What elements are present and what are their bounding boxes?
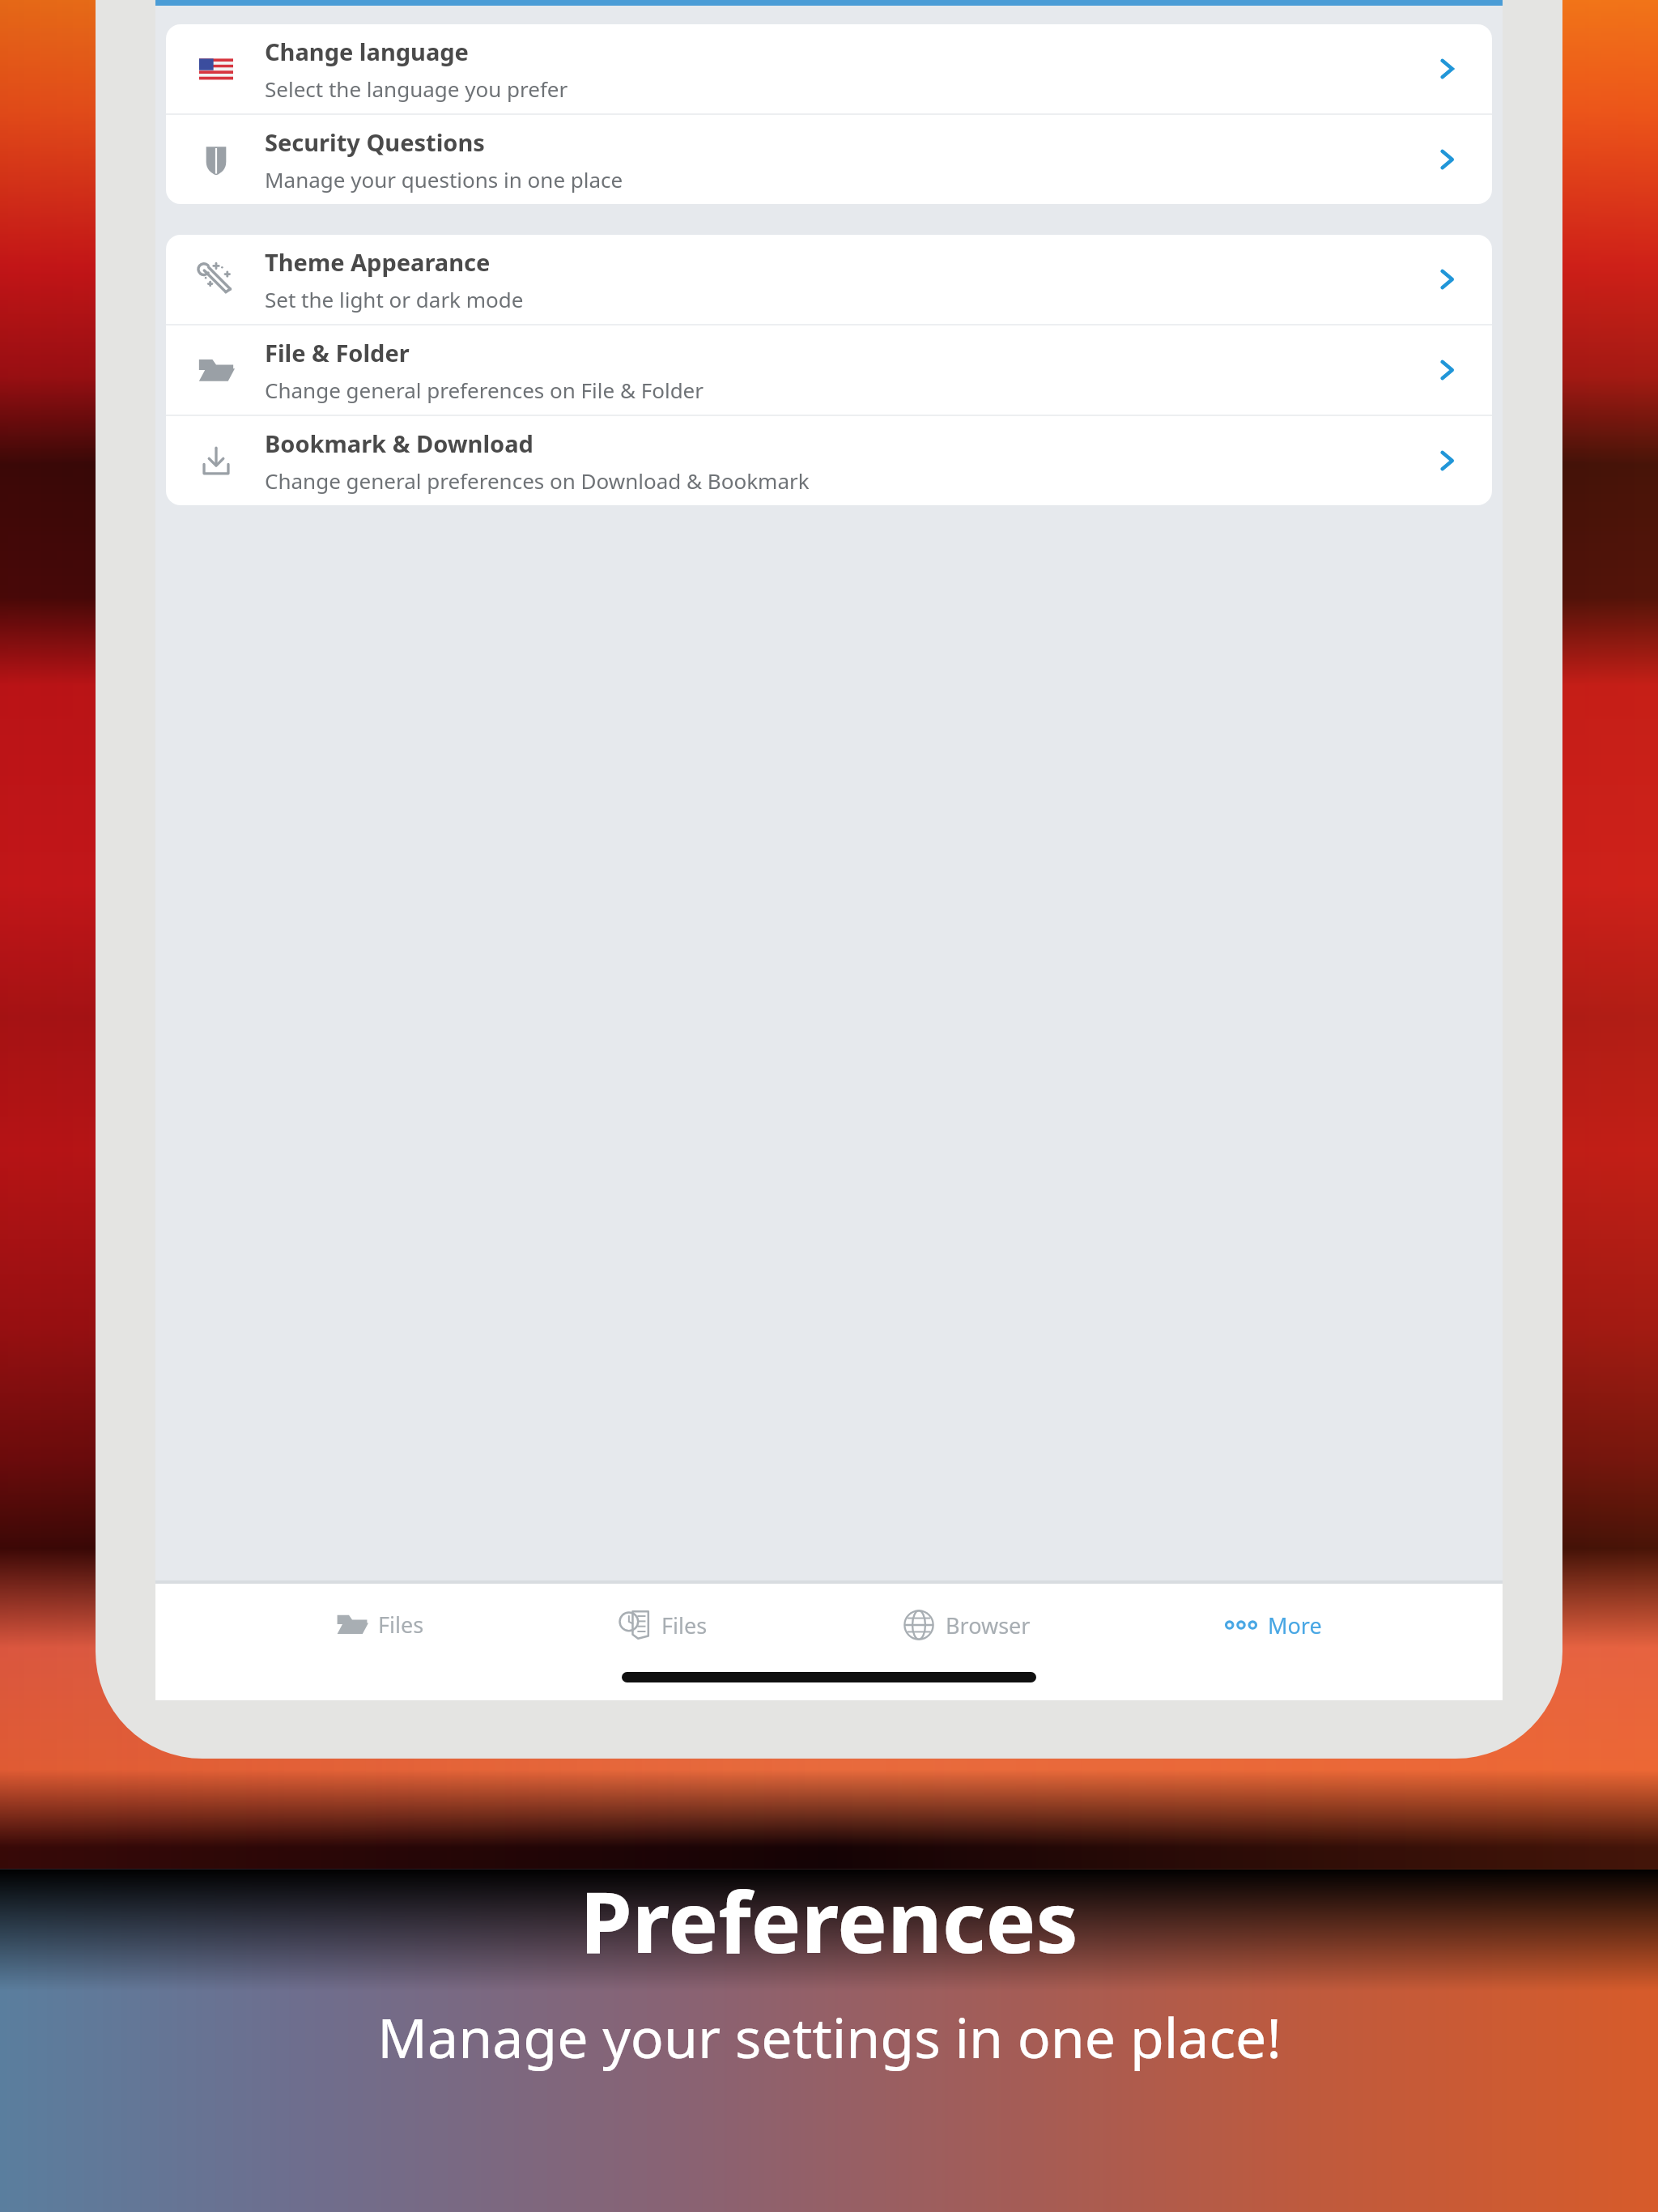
other: Open Change language <box>1429 51 1465 87</box>
button[interactable]: Theme Appearance <box>166 235 1492 324</box>
button[interactable]: File & Folder <box>166 325 1492 415</box>
staticText: Select the language you prefer <box>265 74 568 103</box>
other: Open File & Folder <box>1429 352 1465 388</box>
staticText: File & Folder <box>265 337 410 368</box>
staticText: Change general preferences on Download &… <box>265 466 810 495</box>
staticText: Browser <box>946 1610 1031 1640</box>
staticText: Change language <box>265 36 469 67</box>
button[interactable]: Browser <box>889 1603 1044 1647</box>
button[interactable]: Change language <box>166 24 1492 113</box>
button[interactable]: Files <box>323 1603 437 1645</box>
staticText: More <box>1268 1610 1322 1640</box>
button[interactable]: More <box>1211 1603 1335 1647</box>
button[interactable]: Files <box>605 1603 721 1647</box>
staticText: Manage your questions in one place <box>265 165 623 194</box>
staticText: Files <box>661 1610 708 1640</box>
staticText: Files <box>378 1610 424 1640</box>
button[interactable]: Security Questions <box>166 115 1492 204</box>
staticText: Change general preferences on File & Fol… <box>265 376 704 404</box>
staticText: Manage your settings in one place! <box>377 1999 1282 2074</box>
button[interactable]: Bookmark & Download <box>166 416 1492 505</box>
other: Open Bookmark & Download <box>1429 443 1465 479</box>
other: Open Security Questions <box>1429 142 1465 177</box>
staticText: Preferences <box>580 1863 1078 1978</box>
staticText: Bookmark & Download <box>265 428 534 459</box>
other: Open Theme Appearance <box>1429 262 1465 297</box>
staticText: Security Questions <box>265 126 485 158</box>
staticText: Theme Appearance <box>265 246 491 278</box>
staticText: Set the light or dark mode <box>265 285 524 313</box>
